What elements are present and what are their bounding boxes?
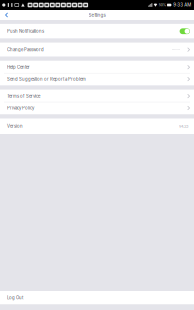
button[interactable]: Log Out — [0, 292, 194, 303]
button[interactable]: Change Password — [0, 44, 194, 55]
staticText: Terms of Service — [7, 93, 40, 99]
staticText: 50% — [159, 3, 166, 7]
staticText: Help Center — [7, 65, 30, 70]
staticText: Version — [7, 124, 23, 129]
button[interactable]: Back — [0, 10, 13, 20]
button[interactable]: Terms of Service — [0, 90, 194, 102]
button[interactable]: Version — [0, 120, 194, 132]
button[interactable]: Send Suggestion or Report a Problem — [0, 73, 194, 85]
button[interactable]: Push Notifications — [180, 28, 190, 34]
staticText: Settings — [88, 12, 105, 18]
staticText: Log Out — [7, 295, 23, 300]
staticText: Push Notifications — [7, 29, 44, 34]
button[interactable]: Privacy Policy — [0, 102, 194, 114]
staticText: 9:33 AM — [173, 2, 191, 8]
staticText: Change Password — [7, 47, 44, 52]
button[interactable]: Help Center — [0, 61, 194, 73]
staticText: Send Suggestion or Report a Problem — [7, 76, 86, 82]
staticText: Privacy Policy — [7, 105, 34, 111]
staticText: v4.23 — [179, 124, 188, 129]
